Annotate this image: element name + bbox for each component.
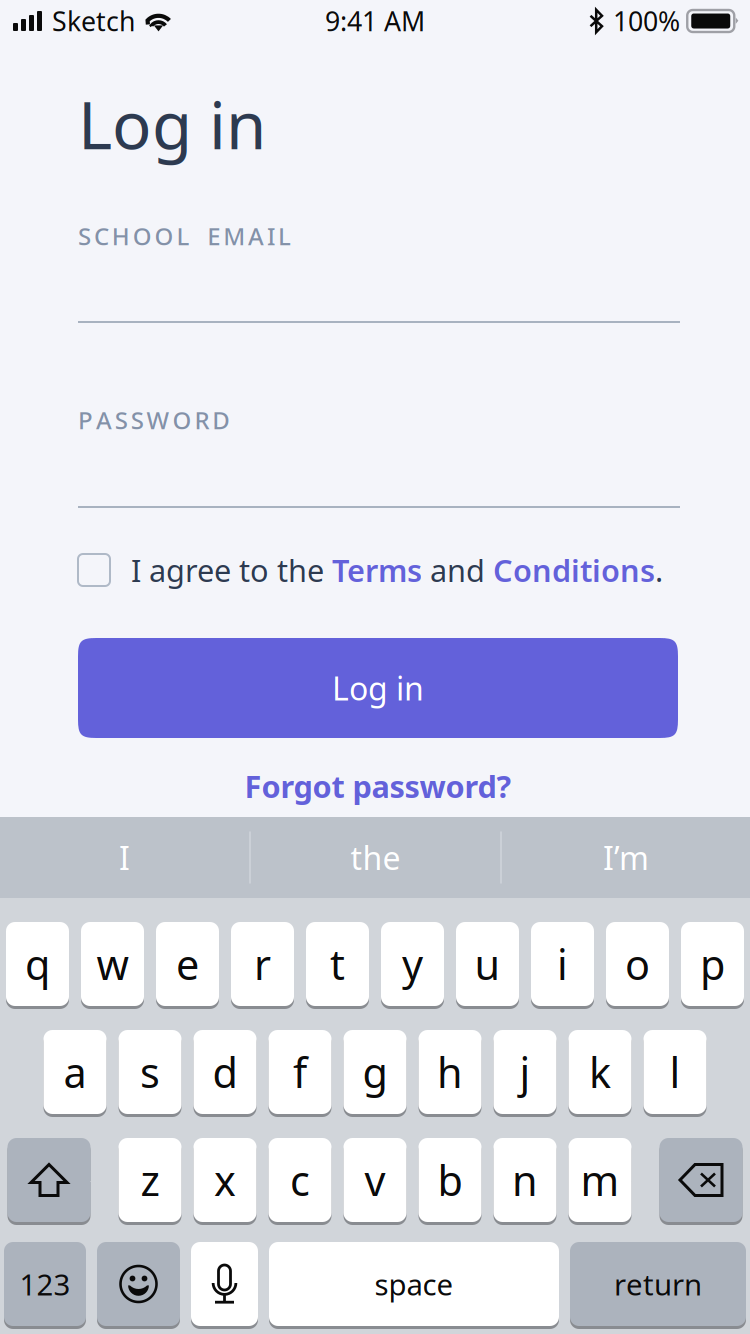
staticText: g: [362, 1045, 387, 1099]
staticText: S: [78, 220, 91, 252]
button[interactable]: p: [681, 922, 744, 1009]
staticText: j: [519, 1045, 530, 1099]
button[interactable]: Shift: [7, 1138, 90, 1225]
staticText: W: [147, 404, 170, 436]
button[interactable]: s: [118, 1030, 181, 1117]
button[interactable]: Forgot password?: [78, 761, 678, 811]
staticText: I: [267, 220, 275, 252]
button[interactable]: Delete: [659, 1138, 742, 1225]
staticText: i: [557, 937, 568, 991]
button[interactable]: g: [343, 1030, 406, 1117]
button[interactable]: space: [269, 1242, 559, 1329]
staticText: e: [176, 937, 199, 991]
staticText: A: [96, 404, 112, 436]
staticText: S: [115, 404, 128, 436]
staticText: h: [437, 1045, 463, 1099]
button[interactable]: e: [156, 922, 219, 1009]
staticText: Log in: [78, 81, 266, 167]
staticText: 123: [19, 1264, 70, 1303]
staticText: f: [293, 1045, 307, 1099]
staticText: 9:41 AM: [325, 3, 425, 39]
staticText: c: [290, 1153, 310, 1207]
button[interactable]: b: [418, 1138, 481, 1225]
staticText: k: [589, 1045, 611, 1099]
button[interactable]: Log in: [78, 638, 678, 738]
staticText: w: [96, 937, 128, 991]
staticText: O: [133, 220, 152, 252]
staticText: v: [364, 1153, 385, 1207]
staticText: return: [614, 1264, 702, 1303]
button[interactable]: the: [251, 817, 500, 898]
button[interactable]: d: [193, 1030, 256, 1117]
button[interactable]: a: [43, 1030, 106, 1117]
button[interactable]: v: [343, 1138, 406, 1225]
staticText: Conditions: [493, 550, 655, 590]
staticText: x: [214, 1153, 236, 1207]
button[interactable]: l: [643, 1030, 706, 1117]
staticText: D: [212, 404, 230, 436]
button[interactable]: u: [456, 922, 519, 1009]
staticText: m: [580, 1153, 619, 1207]
staticText: .: [655, 550, 663, 590]
staticText: O: [155, 220, 174, 252]
staticText: C: [94, 220, 109, 252]
staticText: O: [172, 404, 191, 436]
staticText: z: [140, 1153, 159, 1207]
button[interactable]: I agree to the: [78, 550, 680, 590]
staticText: Log in: [332, 667, 424, 709]
staticText: y: [402, 937, 423, 991]
button[interactable]: 123: [4, 1242, 86, 1329]
staticText: Forgot password?: [244, 766, 511, 806]
button[interactable]: c: [268, 1138, 331, 1225]
staticText: o: [625, 937, 650, 991]
staticText: q: [25, 937, 50, 991]
button[interactable]: w: [81, 922, 144, 1009]
button[interactable]: x: [193, 1138, 256, 1225]
button[interactable]: return: [570, 1242, 746, 1329]
button[interactable]: k: [568, 1030, 631, 1117]
staticText: Terms: [332, 550, 422, 590]
button[interactable]: r: [231, 922, 294, 1009]
staticText: Sketch: [52, 3, 135, 39]
staticText: 100%: [613, 3, 680, 39]
button[interactable]: q: [6, 922, 69, 1009]
staticText: space: [374, 1264, 453, 1303]
staticText: E: [207, 220, 220, 252]
staticText: P: [78, 404, 93, 436]
staticText: a: [63, 1045, 86, 1099]
staticText: b: [437, 1153, 462, 1207]
staticText: S: [131, 404, 144, 436]
staticText: d: [212, 1045, 237, 1099]
staticText: L: [176, 220, 189, 252]
button[interactable]: f: [268, 1030, 331, 1117]
button[interactable]: I: [0, 817, 249, 898]
button[interactable]: I’m: [502, 817, 750, 898]
button[interactable]: m: [568, 1138, 631, 1225]
staticText: H: [112, 220, 130, 252]
button[interactable]: h: [418, 1030, 481, 1117]
staticText: n: [512, 1153, 538, 1207]
staticText: t: [330, 937, 345, 991]
staticText: I’m: [603, 836, 649, 879]
button[interactable]: y: [381, 922, 444, 1009]
button[interactable]: i: [531, 922, 594, 1009]
staticText: M: [223, 220, 245, 252]
staticText: p: [700, 937, 725, 991]
staticText: I: [119, 836, 130, 879]
staticText: R: [194, 404, 209, 436]
button[interactable]: Emoji keyboard: [97, 1242, 180, 1329]
button[interactable]: o: [606, 922, 669, 1009]
staticText: I agree to the: [131, 550, 332, 590]
button[interactable]: z: [118, 1138, 181, 1225]
button[interactable]: t: [306, 922, 369, 1009]
button[interactable]: n: [493, 1138, 556, 1225]
staticText: A: [248, 220, 264, 252]
staticText: the: [350, 836, 400, 879]
staticText: r: [254, 937, 271, 991]
staticText: and: [422, 550, 493, 590]
staticText: u: [474, 937, 500, 991]
staticText: l: [669, 1045, 680, 1099]
button[interactable]: j: [493, 1030, 556, 1117]
button[interactable]: Dictation: [191, 1242, 258, 1329]
